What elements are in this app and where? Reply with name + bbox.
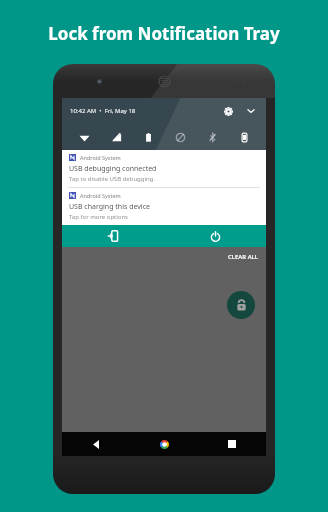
staticText: 10:42 AM • Fri, May 18 [70, 107, 136, 115]
staticText: USB charging this device [69, 202, 150, 212]
staticText: Lock from Notification Tray [48, 22, 280, 45]
button[interactable]: Recent apps [198, 432, 266, 456]
staticText: Tap for more options [69, 213, 128, 221]
staticText: CLEAR ALL [228, 253, 258, 261]
button[interactable]: Home [130, 432, 198, 456]
button[interactable]: CLEAR ALL [228, 253, 258, 261]
button[interactable]: Do not disturb [164, 124, 196, 150]
staticText: Android System [80, 192, 121, 199]
staticText: Android System [80, 154, 121, 161]
button[interactable]: Bluetooth [196, 124, 228, 150]
button[interactable]: Lock screen [62, 225, 164, 247]
button[interactable]: Battery [132, 124, 164, 150]
button[interactable]: Power [164, 225, 266, 247]
button[interactable]: Mobile data [100, 124, 132, 150]
button[interactable]: Back [62, 432, 130, 456]
button[interactable]: Lock now [227, 291, 255, 319]
button[interactable]: Auto rotate [228, 124, 260, 150]
button[interactable]: Collapse [244, 104, 258, 118]
staticText: Tap to disable USB debugging. [69, 175, 156, 183]
button[interactable]: Wi-Fi [68, 124, 100, 150]
staticText: USB debugging connected [69, 164, 157, 174]
button[interactable]: Settings [220, 103, 236, 119]
